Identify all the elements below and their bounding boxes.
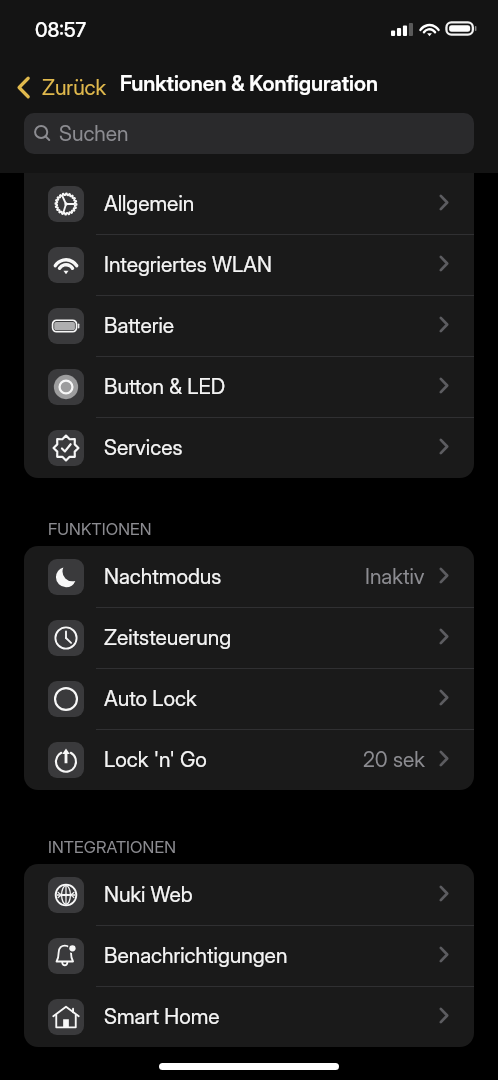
staticText: Services (104, 435, 183, 460)
button[interactable]: Smart Home (24, 986, 474, 1047)
staticText: Nachtmodus (104, 564, 222, 589)
staticText: FUNKTIONEN (48, 519, 152, 539)
button[interactable]: Allgemein (24, 173, 474, 234)
staticText: Benachrichtigungen (104, 943, 288, 968)
staticText: Funktionen & Konfiguration (120, 71, 378, 96)
staticText: 08:57 (35, 18, 87, 42)
button[interactable]: Auto Lock (24, 668, 474, 729)
button[interactable]: Lock 'n' Go (24, 729, 474, 790)
staticText: Auto Lock (104, 686, 197, 711)
button[interactable]: Benachrichtigungen (24, 925, 474, 986)
staticText: Zurück (42, 75, 107, 100)
button[interactable]: Zurück (10, 69, 113, 106)
button[interactable]: Nuki Web (24, 864, 474, 925)
staticText: Integriertes WLAN (104, 252, 272, 277)
button[interactable]: Nachtmodus (24, 546, 474, 607)
staticText: Nuki Web (104, 882, 193, 907)
staticText: Batterie (104, 313, 175, 338)
staticText: Inaktiv (365, 564, 425, 589)
button[interactable]: Suchen (24, 113, 474, 154)
button[interactable]: Batterie (24, 295, 474, 356)
button[interactable]: Zeitsteuerung (24, 607, 474, 668)
button[interactable]: Services (24, 417, 474, 478)
staticText: Smart Home (104, 1004, 220, 1029)
button[interactable]: Button & LED (24, 356, 474, 417)
staticText: Suchen (59, 121, 129, 146)
button[interactable]: Integriertes WLAN (24, 234, 474, 295)
staticText: 20 sek (363, 747, 425, 772)
staticText: Allgemein (104, 191, 195, 216)
staticText: Zeitsteuerung (104, 625, 232, 650)
staticText: Lock 'n' Go (104, 747, 207, 772)
staticText: Button & LED (104, 374, 226, 399)
staticText: INTEGRATIONEN (48, 837, 177, 857)
